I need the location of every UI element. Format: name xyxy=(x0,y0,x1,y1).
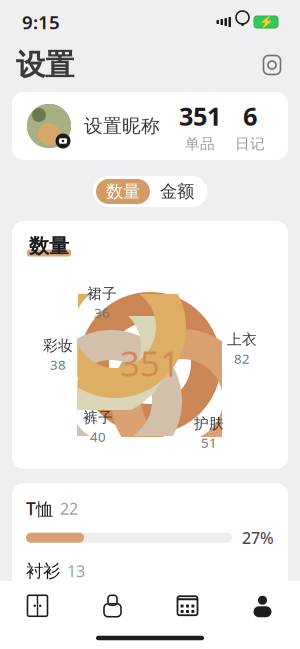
staticText: ⚡ xyxy=(258,15,273,29)
staticText: 护肤 xyxy=(194,415,224,433)
staticText: 设置昵称 xyxy=(84,114,160,137)
staticText: 彩妆 xyxy=(43,337,73,355)
staticText: 日记 xyxy=(235,135,265,153)
staticText: 裙子 xyxy=(87,285,117,303)
button[interactable]: 衣橱 xyxy=(0,584,75,628)
staticText: 38 xyxy=(50,356,66,373)
staticText: 16% xyxy=(242,589,274,610)
staticText: 单品 xyxy=(185,135,215,153)
button[interactable]: 我的 xyxy=(225,584,300,628)
button[interactable]: 日历 xyxy=(150,584,225,628)
staticText: 36 xyxy=(94,304,110,321)
staticText: 9:15 xyxy=(22,10,60,34)
staticText: 13 xyxy=(67,560,85,582)
staticText: 衬衫 xyxy=(26,560,60,582)
staticText: 数量 xyxy=(106,181,140,202)
staticText: 27% xyxy=(242,527,274,548)
staticText: 数量 xyxy=(29,234,69,258)
staticText: 6 xyxy=(243,99,257,133)
button[interactable]: 数量 xyxy=(96,179,150,204)
staticText: 裤子 xyxy=(83,409,113,427)
staticText: 22 xyxy=(60,498,78,519)
staticText: 金额 xyxy=(160,181,194,202)
button[interactable]: 搭配 xyxy=(75,584,150,628)
button[interactable]: Settings xyxy=(260,53,284,77)
staticText: 351 xyxy=(120,340,180,386)
button[interactable]: 金额 xyxy=(150,179,204,204)
button[interactable]: 设置昵称 xyxy=(12,92,288,160)
staticText: T恤 xyxy=(26,497,53,520)
staticText: 设置 xyxy=(16,47,74,83)
staticText: 351 xyxy=(179,99,221,133)
staticText: 82 xyxy=(234,350,250,367)
staticText: 51 xyxy=(201,434,217,451)
staticText: 40 xyxy=(90,428,106,445)
staticText: 上衣 xyxy=(227,331,257,349)
